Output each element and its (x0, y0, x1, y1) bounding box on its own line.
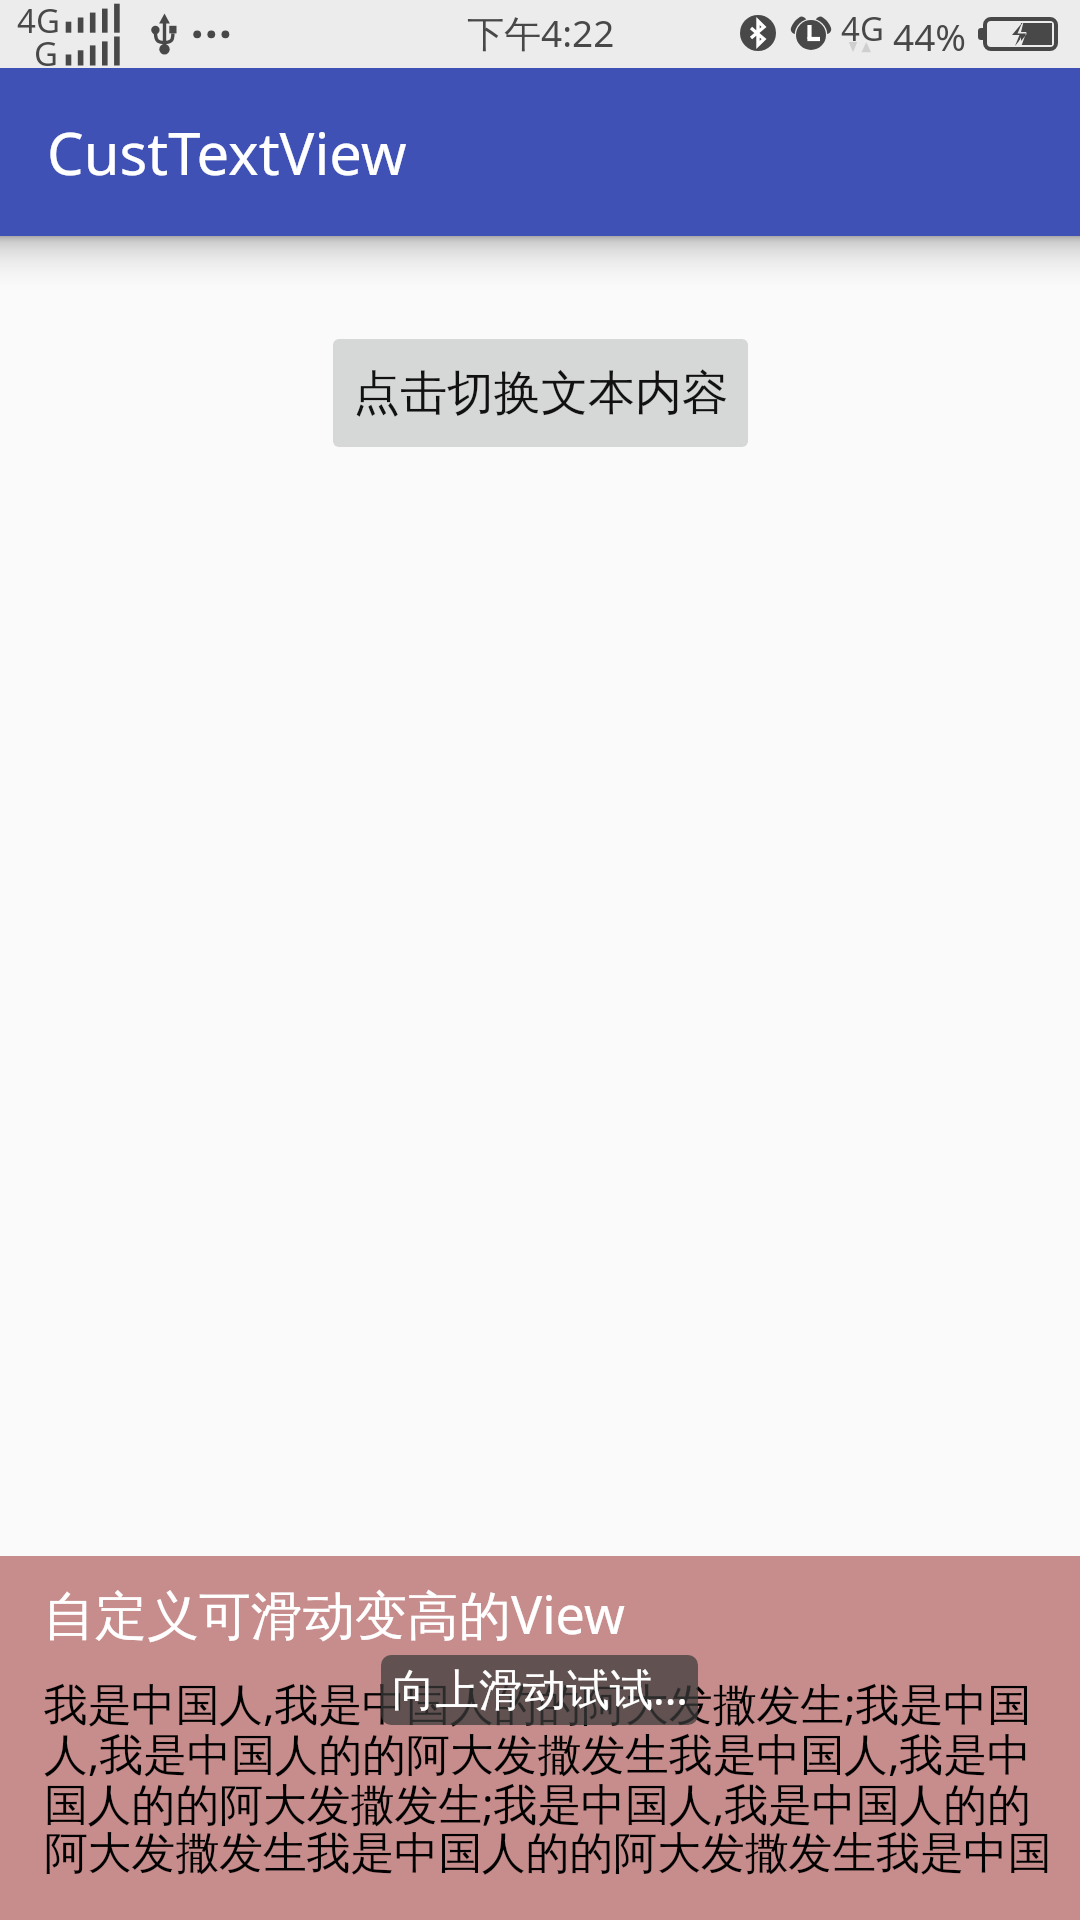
button[interactable]: 自定义可滑动变高的View (0, 1556, 1080, 1920)
other: Signal strength, USB connected, Bluetoot… (0, 0, 1080, 68)
staticText: G (34, 31, 59, 76)
staticText: 4G (841, 6, 884, 51)
staticText: CustTextView (47, 113, 407, 192)
staticText: 4G (17, 0, 60, 43)
staticText: 44% (893, 11, 967, 61)
staticText: 我是中国人,我是中国人的的阿大发撒发生;我是中国人,我是中国人的的阿大发撒发生我… (44, 1673, 1074, 1881)
button[interactable]: 点击切换文本内容 (333, 339, 748, 447)
staticText: 自定义可滑动变高的View (43, 1578, 625, 1649)
staticText: 点击切换文本内容 (353, 364, 729, 423)
staticText: 向上滑动试试... (392, 1658, 688, 1717)
staticText: 下午4:22 (467, 7, 615, 58)
